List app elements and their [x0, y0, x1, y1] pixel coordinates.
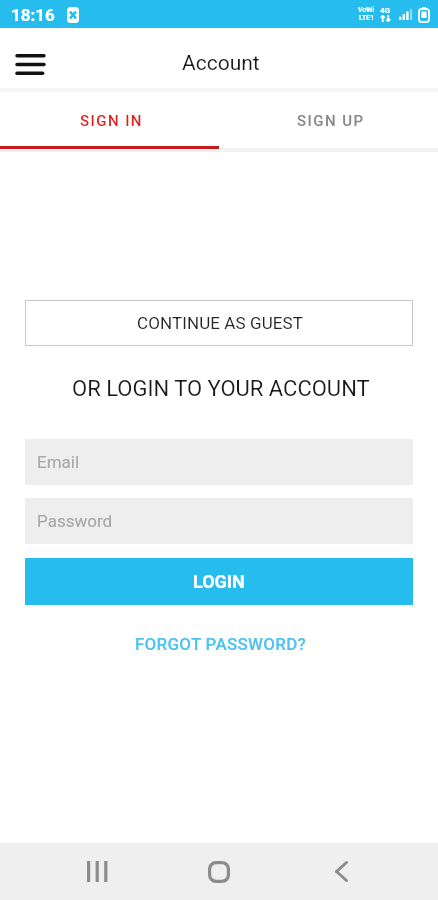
staticText: SIGN UP [297, 112, 365, 130]
staticText: VoWi [358, 6, 375, 14]
button[interactable]: FORGOT PASSWORD? [121, 627, 317, 661]
button[interactable]: SIGN UP [219, 92, 438, 146]
button[interactable]: Password [25, 498, 413, 544]
button[interactable]: Open navigation menu [2, 36, 58, 92]
staticText: 4G [380, 6, 391, 15]
button[interactable]: Back [311, 843, 371, 900]
staticText: OR LOGIN TO YOUR ACCOUNT [72, 376, 370, 402]
staticText: Account [182, 51, 260, 76]
button[interactable]: CONTINUE AS GUEST [25, 300, 413, 346]
button[interactable]: LOGIN [25, 558, 413, 605]
staticText: CONTINUE AS GUEST [137, 313, 304, 333]
staticText: 18:16 [11, 5, 55, 25]
staticText: LOGIN [193, 571, 245, 592]
button[interactable]: SIGN IN [0, 92, 219, 146]
staticText: LTE1 [359, 14, 375, 22]
button[interactable]: Home [189, 843, 249, 900]
staticText: Email [37, 452, 80, 472]
staticText: Password [37, 511, 113, 531]
staticText: SIGN IN [80, 112, 143, 130]
button[interactable]: Email [25, 439, 413, 485]
button[interactable]: Recent apps [67, 843, 127, 900]
staticText: FORGOT PASSWORD? [135, 634, 307, 654]
